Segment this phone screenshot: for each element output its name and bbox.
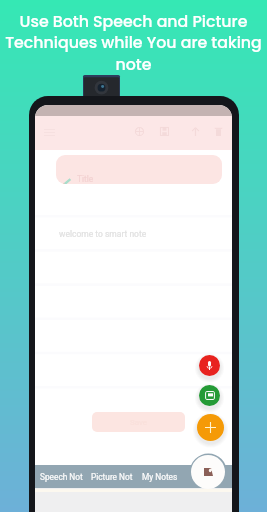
staticText: Title — [77, 174, 94, 184]
staticText: Picture Not — [91, 472, 133, 482]
button[interactable]: New note — [197, 414, 224, 441]
button[interactable]: Speech Not — [40, 465, 83, 488]
staticText: welcome to smart note — [59, 229, 147, 239]
staticText: My Notes — [142, 472, 178, 482]
staticText: Use Both Speech and Picture Techniques w… — [3, 10, 264, 76]
button[interactable]: Save — [92, 412, 185, 432]
button[interactable]: Sync — [131, 123, 147, 139]
button[interactable]: My Notes — [142, 465, 178, 488]
button[interactable]: Share — [187, 123, 203, 139]
button[interactable]: Add picture — [199, 385, 220, 406]
staticText: Speech Not — [40, 472, 83, 482]
button[interactable]: Save note — [156, 123, 172, 139]
button[interactable]: Delete — [210, 123, 226, 139]
button[interactable]: Gallery — [191, 455, 225, 489]
button[interactable]: Title — [56, 155, 222, 184]
button[interactable]: Picture Not — [91, 465, 133, 488]
button[interactable]: Record audio — [199, 355, 220, 376]
